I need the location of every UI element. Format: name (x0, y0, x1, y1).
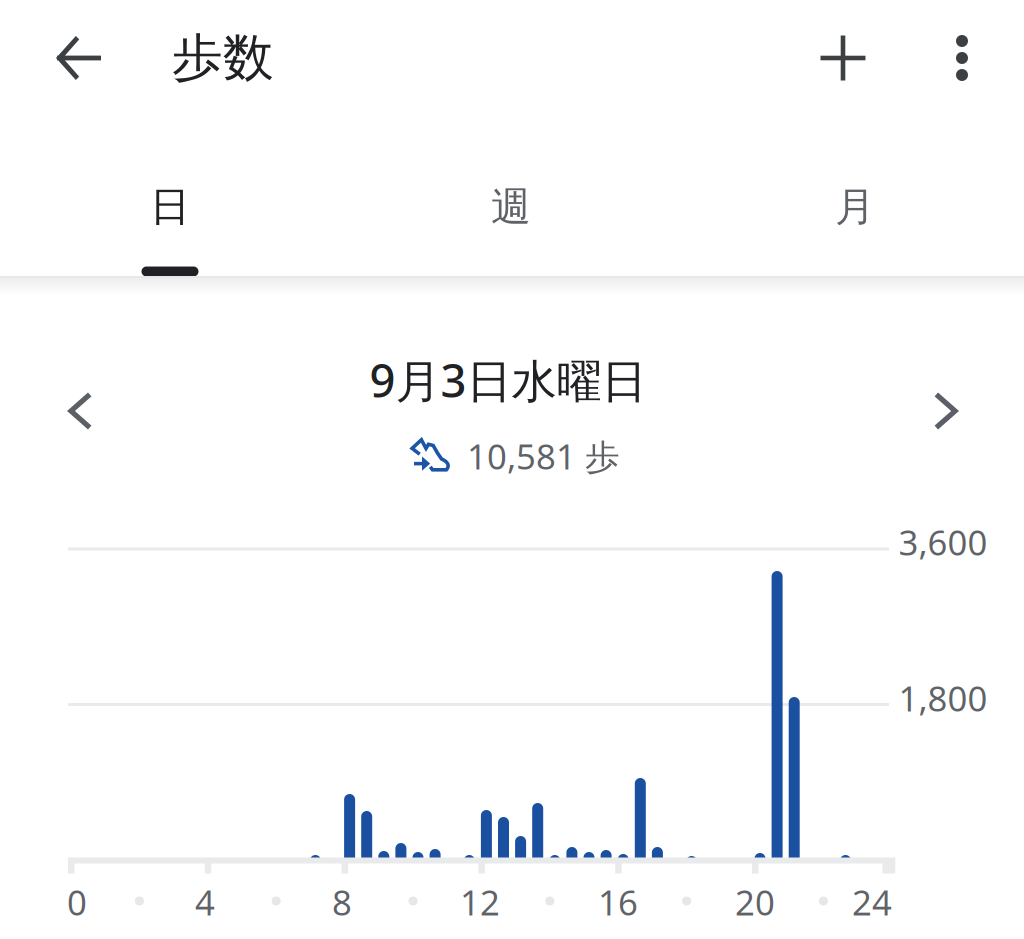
staticText: 1,800 (898, 675, 987, 721)
staticText: 0 (67, 879, 87, 925)
staticText: 9月3日水曜日 (369, 350, 646, 410)
button[interactable]: Next day (896, 356, 1006, 466)
staticText: 日 (150, 182, 190, 231)
button[interactable]: Add (791, 6, 895, 110)
staticText: 歩数 (172, 27, 274, 89)
button[interactable]: More options (915, 6, 1009, 110)
button[interactable]: 週 (340, 134, 681, 280)
button[interactable]: 月 (684, 134, 1024, 280)
staticText: 8 (332, 879, 352, 925)
staticText: 24 (852, 879, 892, 925)
staticText: 月 (835, 182, 875, 231)
staticText: 12 (460, 879, 500, 925)
button[interactable]: Back (31, 6, 127, 110)
button[interactable]: 日 (0, 134, 340, 280)
staticText: 4 (195, 879, 215, 925)
staticText: 3,600 (898, 519, 987, 565)
staticText: 10,581 歩 (467, 433, 620, 479)
button[interactable]: Previous day (25, 356, 135, 466)
staticText: 週 (491, 182, 531, 231)
staticText: 20 (735, 879, 775, 925)
staticText: 16 (598, 879, 638, 925)
